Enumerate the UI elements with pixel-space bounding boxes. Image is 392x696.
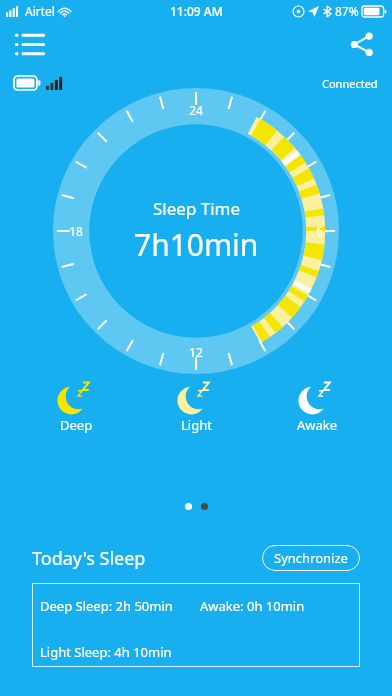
staticText: Deep — [60, 416, 93, 434]
button[interactable]: Awake — [272, 382, 362, 434]
staticText: 11:09 AM — [170, 3, 223, 19]
staticText: 6 — [316, 223, 323, 239]
button[interactable]: Menu — [8, 22, 52, 66]
button[interactable]: Synchronize — [262, 545, 360, 571]
staticText: Connected — [322, 76, 378, 91]
staticText: Light Sleep: 4h 10min — [40, 643, 172, 661]
staticText: Deep Sleep: 2h 50min — [40, 597, 200, 615]
staticText: 12 — [189, 344, 203, 360]
staticText: Awake — [297, 416, 338, 434]
staticText: Awake: 0h 10min — [200, 597, 360, 615]
button[interactable]: Light — [151, 382, 241, 434]
button[interactable]: Share — [340, 22, 384, 66]
staticText: 18 — [69, 223, 83, 239]
staticText: Light — [181, 416, 212, 434]
staticText: 7h10min — [134, 224, 259, 265]
staticText: Synchronize — [274, 549, 348, 567]
staticText: 87% — [335, 3, 359, 19]
staticText: Sleep Time — [153, 197, 241, 220]
staticText: Airtel — [25, 3, 55, 19]
button[interactable]: Deep — [31, 382, 121, 434]
staticText: Today's Sleep — [32, 546, 146, 571]
staticText: 24 — [189, 102, 203, 118]
